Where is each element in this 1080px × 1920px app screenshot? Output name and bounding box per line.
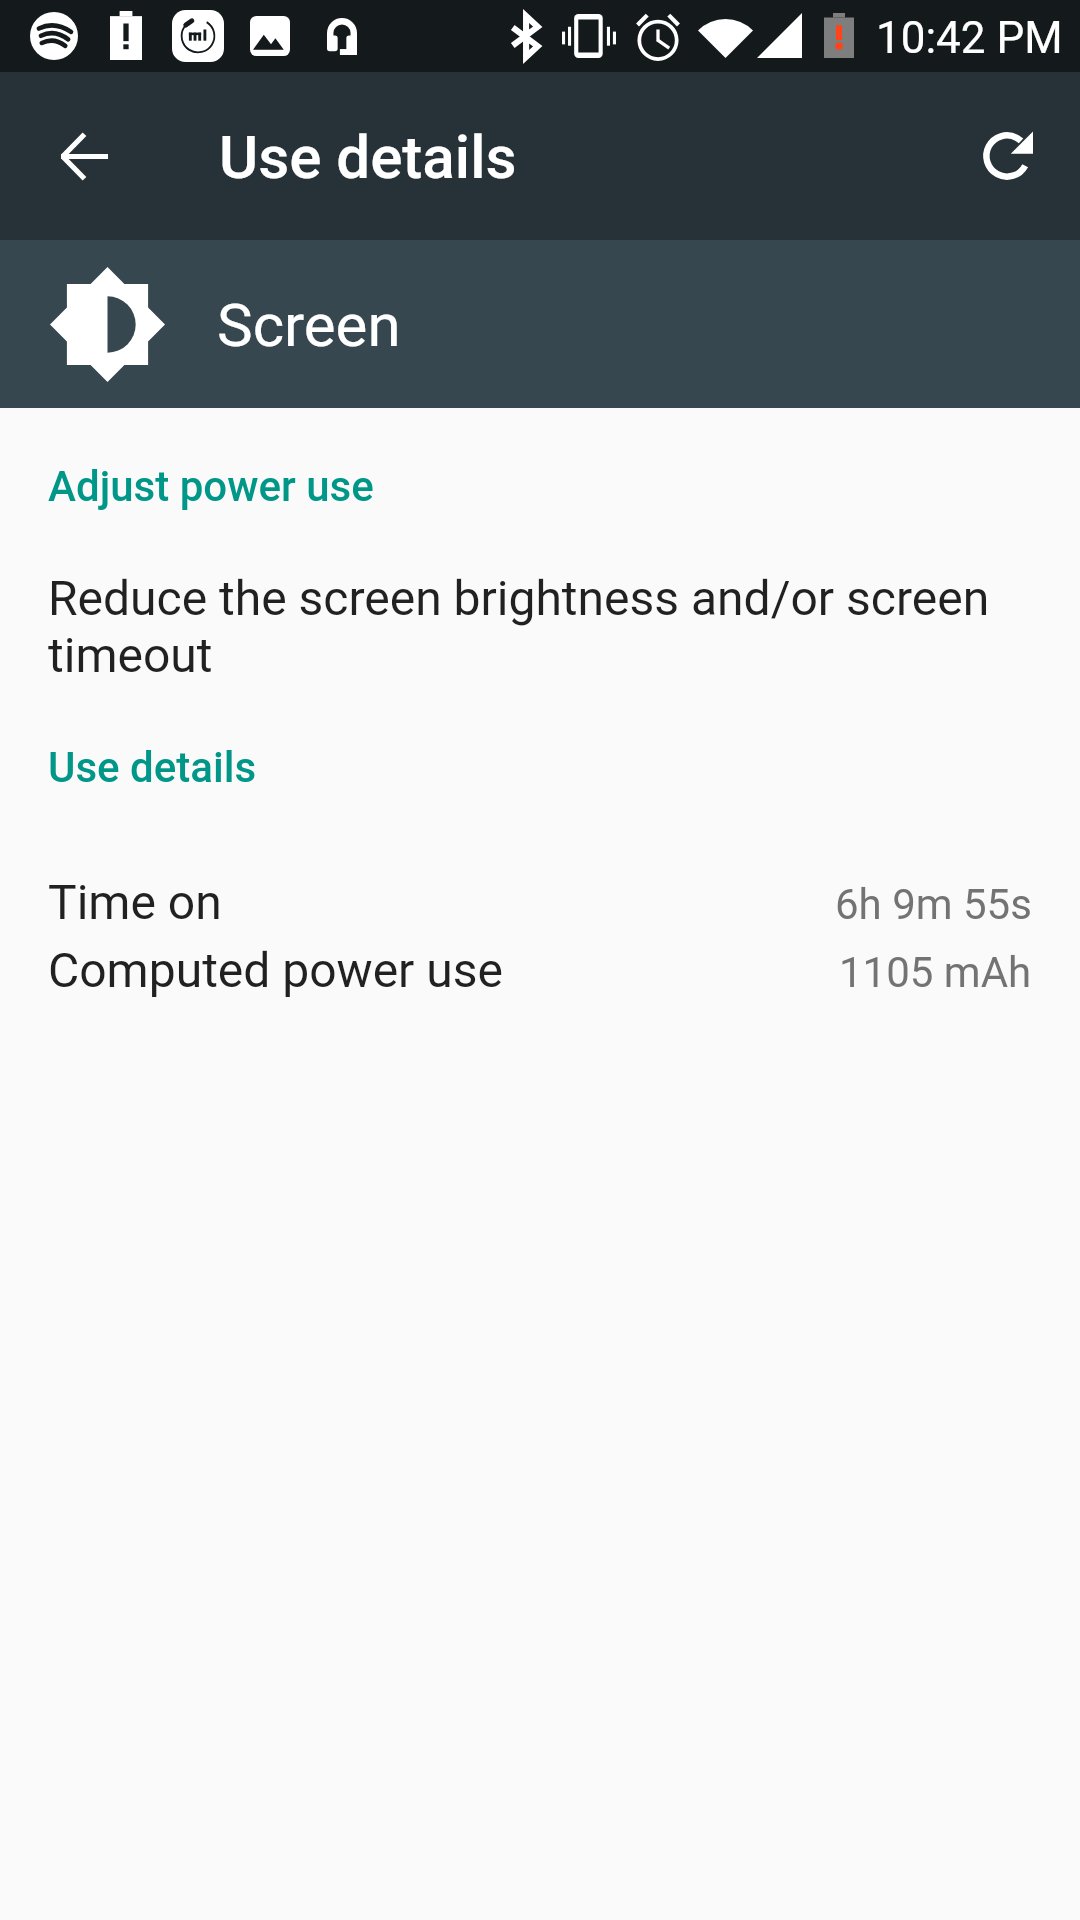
staticText: Screen [217,290,401,360]
button[interactable]: Navigate up [36,108,132,204]
staticText: 1105 mAh [839,948,1032,997]
button[interactable]: Refresh [960,108,1056,204]
staticText: Use details [219,122,517,192]
staticText: 10:42 PM [876,12,1063,64]
staticText: Use details [48,743,257,792]
staticText: Adjust power use [48,462,374,511]
button[interactable]: Computed power use [0,942,1080,998]
staticText: Time on [48,874,222,930]
staticText: Computed power use [48,942,503,998]
staticText: Reduce the screen brightness and/or scre… [48,570,1032,684]
button[interactable]: Time on [0,874,1080,930]
staticText: 6h 9m 55s [835,880,1032,929]
button[interactable]: Screen [0,240,1080,408]
